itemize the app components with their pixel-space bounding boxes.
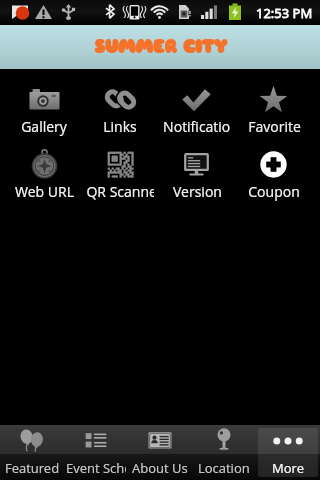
staticText: 12:53 PM bbox=[256, 4, 313, 22]
button[interactable]: Featured bbox=[0, 425, 64, 480]
staticText: About Us bbox=[132, 459, 188, 477]
staticText: Event Schedule bbox=[66, 459, 126, 477]
button[interactable]: Version bbox=[158, 149, 235, 203]
staticText: Coupon bbox=[248, 182, 300, 201]
button[interactable]: QR Scanner bbox=[82, 149, 158, 203]
staticText: More bbox=[272, 459, 304, 477]
button[interactable]: Gallery bbox=[6, 84, 82, 138]
staticText: Favorite bbox=[248, 117, 301, 136]
button[interactable]: Location bbox=[192, 425, 256, 480]
staticText: QR Scanner bbox=[86, 182, 154, 201]
button[interactable]: Web URL bbox=[6, 149, 82, 203]
button[interactable]: Favorite bbox=[235, 84, 312, 138]
button[interactable]: Links bbox=[82, 84, 158, 138]
button[interactable]: Notification bbox=[158, 84, 235, 138]
staticText: SUMMER CITY bbox=[94, 35, 227, 59]
button[interactable]: More bbox=[256, 425, 320, 480]
staticText: Version bbox=[173, 182, 222, 201]
button[interactable]: Event Schedule bbox=[64, 425, 128, 480]
staticText: Gallery bbox=[21, 117, 67, 136]
button[interactable]: About Us bbox=[128, 425, 192, 480]
staticText: Location bbox=[198, 459, 250, 477]
button[interactable]: Coupon bbox=[235, 149, 312, 203]
staticText: Featured bbox=[5, 459, 60, 477]
staticText: Links bbox=[103, 117, 137, 136]
staticText: Notification bbox=[163, 117, 231, 136]
staticText: Web URL bbox=[15, 182, 74, 201]
